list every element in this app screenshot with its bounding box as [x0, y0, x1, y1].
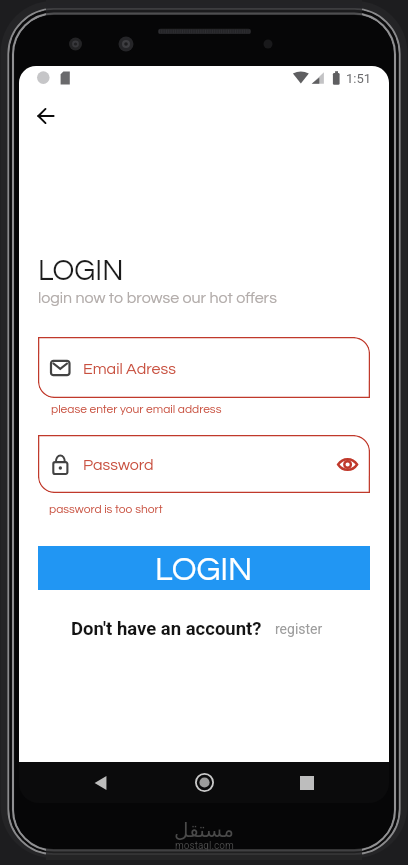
button[interactable]: LOGIN — [38, 546, 370, 590]
staticText: مستقل — [174, 818, 234, 841]
staticText: 1:51 — [346, 71, 372, 86]
button[interactable]: Back — [77, 762, 125, 803]
button[interactable]: Email Adress — [38, 337, 370, 398]
staticText: Password — [83, 457, 154, 473]
staticText: Don't have an account? — [71, 618, 262, 640]
button[interactable]: Password — [38, 435, 370, 493]
staticText: register — [275, 621, 323, 637]
staticText: LOGIN — [155, 553, 253, 587]
staticText: Email Adress — [83, 361, 176, 377]
button[interactable]: Don't have an account? — [71, 618, 323, 640]
staticText: password is too short — [49, 503, 163, 515]
staticText: mostaql.com — [175, 840, 234, 852]
button[interactable]: Recent apps — [283, 762, 331, 803]
staticText: LOGIN — [38, 256, 124, 286]
button[interactable]: Back — [22, 92, 70, 140]
staticText: please enter your email address — [51, 403, 222, 415]
button[interactable]: Home — [180, 762, 228, 803]
staticText: login now to browse our hot offers — [38, 290, 277, 306]
